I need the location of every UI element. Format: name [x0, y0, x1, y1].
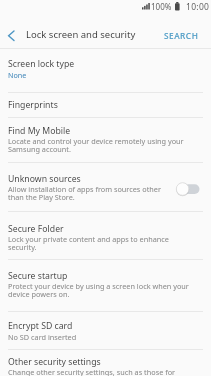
button[interactable]: [0, 349, 211, 376]
staticText: SEARCH: [164, 30, 199, 41]
staticText: Secure startup: [8, 270, 68, 282]
staticText: 10:00: [186, 1, 210, 13]
staticText: Locate and control your device remotely …: [8, 136, 184, 154]
staticText: No SD card inserted: [8, 332, 77, 342]
staticText: Allow installation of apps from sources …: [8, 184, 161, 202]
staticText: Lock screen and security: [26, 28, 136, 41]
staticText: Screen lock type: [8, 58, 75, 70]
staticText: Change other security settings, such as …: [8, 367, 176, 376]
staticText: Unknown sources: [8, 173, 81, 185]
staticText: Encrypt SD card: [8, 320, 73, 332]
button[interactable]: [0, 259, 211, 310]
button[interactable]: [0, 118, 211, 162]
button[interactable]: [0, 163, 211, 210]
button[interactable]: [0, 211, 211, 258]
button[interactable]: [0, 311, 211, 348]
button[interactable]: [0, 24, 44, 50]
staticText: Find My Mobile: [8, 125, 71, 137]
staticText: None: [8, 70, 27, 80]
button[interactable]: [174, 180, 202, 197]
staticText: Lock your private content and apps to en…: [8, 234, 169, 252]
staticText: Fingerprints: [8, 99, 58, 111]
staticText: Protect your device by using a screen lo…: [8, 281, 189, 299]
staticText: 100%: [151, 1, 172, 12]
button[interactable]: [0, 93, 211, 117]
staticText: Other security settings: [8, 356, 101, 368]
button[interactable]: SEARCH: [160, 26, 206, 46]
staticText: Secure Folder: [8, 223, 64, 235]
button[interactable]: [0, 49, 211, 92]
